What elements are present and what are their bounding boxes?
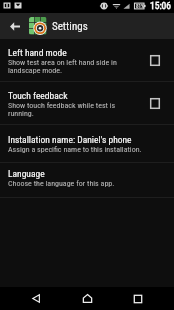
button[interactable]: Installation name: Daniel's phone (0, 125, 174, 162)
button[interactable]: Recents (123, 287, 153, 310)
staticText: Settings (52, 20, 88, 33)
button[interactable]: Back (21, 287, 51, 310)
staticText: Choose the language for this app. (8, 179, 115, 188)
button[interactable]: Home (72, 287, 102, 310)
button[interactable]: Touch feedback (0, 82, 174, 124)
staticText: Show touch feedback while test is runnin… (8, 101, 141, 118)
button[interactable]: Left hand mode (0, 39, 174, 81)
button[interactable]: Toggle (149, 54, 160, 66)
button[interactable]: Toggle (149, 97, 160, 109)
button[interactable]: Back (0, 13, 29, 39)
staticText: 81% (136, 3, 145, 9)
staticText: Show test area on left hand side in land… (8, 58, 141, 75)
staticText: Language (8, 168, 45, 179)
staticText: Left hand mode (8, 47, 67, 58)
staticText: 15:06 (150, 0, 171, 11)
staticText: Assign a specific name to this installat… (8, 145, 142, 154)
staticText: Touch feedback (8, 90, 68, 101)
staticText: Installation name: Daniel's phone (8, 134, 132, 145)
button[interactable]: Language (0, 163, 174, 197)
